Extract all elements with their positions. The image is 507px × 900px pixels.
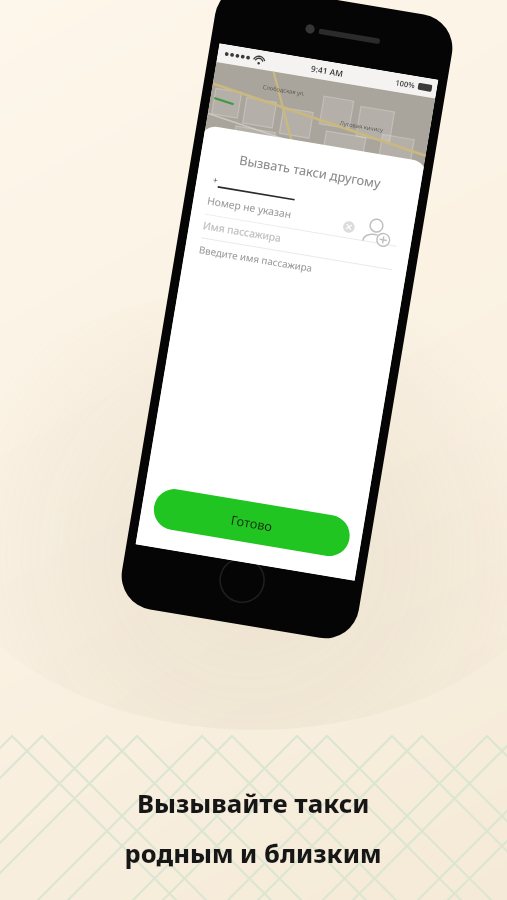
button[interactable]: Вызывайте такси родным и близким [0, 0, 507, 900]
